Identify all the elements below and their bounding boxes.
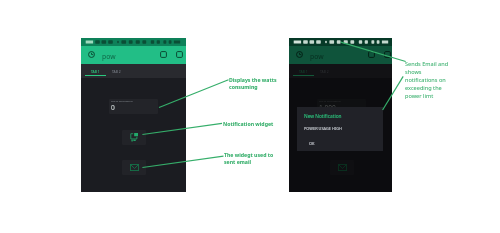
button[interactable]: OK [306,139,317,147]
staticText: 0 [111,103,115,112]
button[interactable]: Open folder [158,49,168,59]
button[interactable]: Open folder [366,49,376,59]
button[interactable]: New item [174,49,184,59]
button[interactable]: Send email [122,160,146,175]
staticText: OK [309,141,315,146]
staticText: pow [102,52,116,61]
button[interactable]: New item [382,49,392,59]
staticText: WATTS CONSUMING [111,100,133,103]
staticText: TAB 2 [320,69,329,73]
button[interactable]: WATTS CONSUMING [317,99,366,114]
staticText: Displays the watts consuming [229,76,277,91]
staticText: POWER USAGE HIGH [304,126,342,131]
button[interactable]: Send email [330,160,354,175]
staticText: WATTS CONSUMING [319,100,341,103]
button[interactable]: Notification widget [122,130,146,145]
button[interactable]: TAB 1 [293,64,314,78]
button[interactable]: History [87,50,96,59]
staticText: New Notification [304,113,342,120]
staticText: pow [310,52,324,61]
staticText: 1,000 [319,103,336,112]
button[interactable]: History [295,50,304,59]
staticText: TAB 1 [299,69,308,73]
staticText: Notification widget [223,120,274,127]
button[interactable]: TAB 1 [85,64,106,78]
staticText: Sends Email and shows notifications on e… [405,60,449,100]
staticText: TAB 2 [112,69,121,73]
staticText: TAB 1 [91,69,100,73]
button[interactable]: TAB 2 [106,64,127,78]
button[interactable]: WATTS CONSUMING [109,99,158,114]
staticText: The widegt used to sent email [224,151,274,166]
